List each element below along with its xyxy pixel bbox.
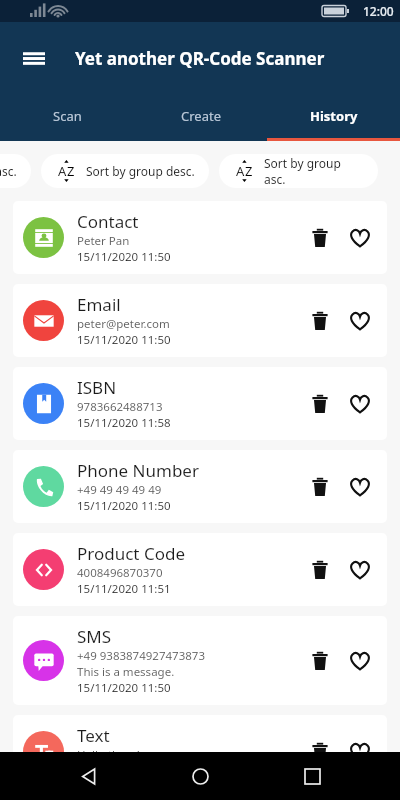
staticText: Phone Number — [77, 459, 199, 482]
button[interactable]: Email — [13, 284, 387, 357]
staticText: peter@peter.com — [77, 316, 170, 332]
button[interactable]: Favorite — [343, 304, 377, 338]
staticText: +49 9383874927473873 — [77, 648, 205, 664]
staticText: Yet another QR-Code Scanner — [75, 47, 325, 70]
button[interactable]: Favorite — [343, 221, 377, 255]
staticText: Sort by group desc. — [86, 163, 195, 179]
staticText: Sort by group asc. — [264, 155, 364, 187]
staticText: Create — [181, 107, 221, 125]
button[interactable]: Scan — [0, 94, 134, 138]
staticText: Hello there! — [77, 747, 140, 763]
button[interactable]: Text — [13, 715, 387, 788]
button[interactable]: Recent apps — [289, 753, 335, 799]
staticText: 15/11/2020 11:50 — [77, 249, 171, 265]
button[interactable]: Delete — [303, 387, 337, 421]
button[interactable]: Delete — [303, 221, 337, 255]
button[interactable]: Contact — [13, 201, 387, 274]
button[interactable]: Product Code — [13, 533, 387, 606]
staticText: 15/11/2020 11:50 — [77, 332, 171, 348]
staticText: Z — [67, 162, 75, 180]
staticText: Contact — [77, 210, 139, 233]
staticText: Product Code — [77, 542, 186, 565]
staticText: 4008496870370 — [77, 565, 163, 581]
button[interactable]: Favorite — [343, 735, 377, 769]
button[interactable]: Create — [134, 94, 267, 138]
staticText: This is a message. — [77, 664, 175, 680]
staticText: Email — [77, 293, 121, 316]
button[interactable]: History — [267, 94, 400, 138]
staticText: ne asc. — [0, 163, 17, 179]
staticText: 15/11/2020 11:50 — [77, 680, 171, 696]
button[interactable]: Delete — [303, 735, 337, 769]
staticText: SMS — [77, 625, 112, 648]
staticText: +49 49 49 49 49 — [77, 482, 162, 498]
staticText: 15/11/2020 11:50 — [77, 498, 171, 514]
button[interactable]: Open navigation menu — [12, 36, 56, 80]
button[interactable]: Phone Number — [13, 450, 387, 523]
staticText: 9783662488713 — [77, 399, 163, 415]
staticText: Scan — [53, 107, 82, 125]
button[interactable]: Delete — [303, 470, 337, 504]
staticText: 15/11/2020 11:58 — [77, 415, 171, 431]
button[interactable]: ne asc. — [0, 154, 31, 188]
button[interactable]: Favorite — [343, 387, 377, 421]
staticText: Peter Pan — [77, 233, 130, 249]
staticText: 15/11/2020 11:50 — [77, 763, 171, 779]
staticText: 15/11/2020 11:51 — [77, 581, 171, 597]
button[interactable]: ISBN — [13, 367, 387, 440]
staticText: Text — [77, 724, 110, 747]
button[interactable]: A — [41, 154, 209, 188]
button[interactable]: Delete — [303, 644, 337, 678]
button[interactable]: Favorite — [343, 644, 377, 678]
button[interactable]: Favorite — [343, 470, 377, 504]
staticText: ISBN — [77, 376, 117, 399]
button[interactable]: Delete — [303, 553, 337, 587]
staticText: 12:00 — [363, 3, 394, 19]
button[interactable]: SMS — [13, 616, 387, 705]
button[interactable]: Back — [66, 753, 112, 799]
button[interactable]: Delete — [303, 304, 337, 338]
button[interactable]: Home — [177, 753, 223, 799]
staticText: History — [310, 107, 358, 125]
staticText: Z — [245, 162, 253, 180]
staticText: A — [58, 162, 67, 180]
button[interactable]: Favorite — [343, 553, 377, 587]
staticText: A — [236, 162, 245, 180]
button[interactable]: A — [219, 154, 378, 188]
